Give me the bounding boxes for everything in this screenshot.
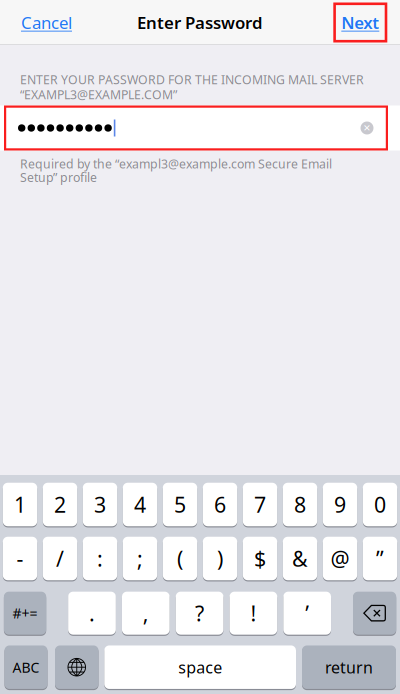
- button[interactable]: Delete: [353, 592, 396, 636]
- button[interactable]: 1: [3, 483, 37, 527]
- staticText: ?: [195, 599, 204, 628]
- button[interactable]: 7: [243, 483, 277, 527]
- button[interactable]: 8: [283, 483, 317, 527]
- button[interactable]: &: [283, 537, 317, 581]
- staticText: :: [97, 544, 103, 573]
- staticText: Required by the “exampl3@example.com Sec…: [20, 155, 332, 172]
- staticText: Setup” profile: [20, 169, 97, 186]
- staticText: ENTER YOUR PASSWORD FOR THE INCOMING MAI…: [20, 71, 364, 88]
- button[interactable]: ): [203, 537, 237, 581]
- staticText: /: [56, 544, 64, 573]
- staticText: 7: [254, 490, 266, 519]
- staticText: ✕: [363, 123, 371, 133]
- staticText: ”: [376, 544, 384, 573]
- button[interactable]: 0: [363, 483, 397, 527]
- button[interactable]: Next keyboard: [55, 645, 98, 690]
- staticText: Enter Password: [137, 11, 263, 34]
- button[interactable]: space: [104, 645, 296, 690]
- staticText: return: [325, 656, 373, 678]
- button[interactable]: 5: [163, 483, 197, 527]
- staticText: Next: [341, 11, 379, 34]
- button[interactable]: !: [230, 592, 277, 636]
- button[interactable]: $: [243, 537, 277, 581]
- staticText: -: [16, 544, 23, 573]
- button[interactable]: 3: [83, 483, 117, 527]
- button[interactable]: ”: [363, 537, 397, 581]
- staticText: 0: [374, 490, 386, 519]
- button[interactable]: -: [3, 537, 37, 581]
- button[interactable]: return: [302, 645, 396, 690]
- staticText: 3: [94, 490, 106, 519]
- button[interactable]: ’: [283, 592, 331, 636]
- staticText: 4: [134, 490, 146, 519]
- staticText: 2: [54, 490, 66, 519]
- staticText: (: [177, 544, 183, 573]
- staticText: !: [250, 599, 256, 628]
- button[interactable]: (: [163, 537, 197, 581]
- staticText: space: [178, 656, 222, 678]
- staticText: Cancel: [21, 11, 72, 34]
- button[interactable]: 4: [123, 483, 157, 527]
- staticText: ,: [143, 599, 149, 628]
- button[interactable]: :: [83, 537, 117, 581]
- staticText: ;: [137, 544, 143, 573]
- button[interactable]: Clear text: [356, 117, 378, 139]
- button[interactable]: .: [68, 592, 116, 636]
- button[interactable]: ;: [123, 537, 157, 581]
- staticText: .: [89, 599, 95, 628]
- button[interactable]: @: [323, 537, 357, 581]
- staticText: 6: [214, 490, 226, 519]
- staticText: &: [292, 544, 308, 573]
- button[interactable]: 9: [323, 483, 357, 527]
- staticText: @: [330, 544, 349, 573]
- staticText: 8: [294, 490, 306, 519]
- staticText: 9: [334, 490, 346, 519]
- staticText: ABC: [12, 658, 39, 677]
- button[interactable]: Next: [333, 2, 400, 42]
- button[interactable]: ABC: [4, 645, 47, 690]
- button[interactable]: 2: [43, 483, 77, 527]
- button[interactable]: Cancel: [0, 0, 86, 45]
- staticText: $: [254, 544, 266, 573]
- button[interactable]: #+=: [4, 592, 46, 636]
- staticText: ): [217, 544, 223, 573]
- staticText: #+=: [12, 604, 37, 623]
- staticText: “EXAMPL3@EXAMPLE.COM”: [20, 86, 177, 103]
- staticText: 5: [174, 490, 186, 519]
- button[interactable]: /: [43, 537, 77, 581]
- button[interactable]: 6: [203, 483, 237, 527]
- button[interactable]: ?: [176, 592, 223, 636]
- button[interactable]: ,: [122, 592, 170, 636]
- staticText: ’: [305, 599, 309, 628]
- staticText: 1: [14, 490, 26, 519]
